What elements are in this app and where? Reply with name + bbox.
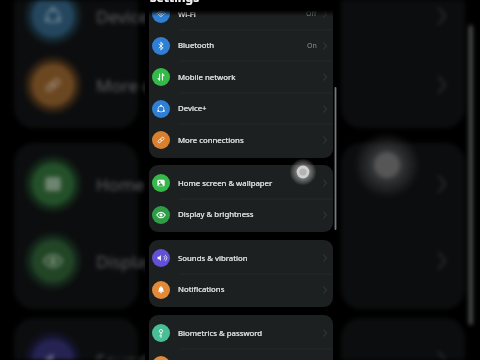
button[interactable]: Home screen & wallpaper — [149, 167, 333, 199]
button[interactable]: More connections — [149, 124, 333, 156]
staticText: Device+ — [96, 5, 159, 28]
button[interactable]: Sounds & vibration — [149, 242, 333, 274]
staticText: More connections — [96, 74, 240, 97]
staticText: Off — [306, 9, 317, 19]
other: Touch indicator — [145, 0, 337, 360]
staticText: Display & brightness — [178, 209, 254, 220]
staticText: More connections — [178, 135, 244, 146]
staticText: Display & bright — [96, 250, 225, 273]
staticText: Sounds — [96, 349, 156, 360]
button[interactable]: Notifications — [149, 274, 333, 305]
staticText: Bluetooth — [178, 40, 215, 51]
staticText: Home screen & wallpaper — [178, 178, 273, 189]
staticText: Biometrics & password — [178, 328, 263, 339]
button[interactable]: Device+ — [149, 93, 333, 124]
staticText: Mobile network — [178, 72, 236, 83]
staticText: Device+ — [178, 103, 207, 114]
staticText: Home screen — [96, 173, 202, 196]
staticText: Sounds & vibration — [178, 253, 248, 264]
staticText: Settings — [150, 0, 200, 5]
staticText: On — [307, 41, 317, 51]
button[interactable]: Mobile network — [149, 61, 333, 93]
button[interactable]: Bluetooth — [149, 30, 333, 61]
button[interactable]: Biometrics & password — [149, 317, 333, 349]
button[interactable]: Wi-Fi — [149, 0, 333, 30]
button[interactable]: Apps — [149, 349, 333, 360]
staticText: Wi-Fi — [178, 9, 196, 20]
button[interactable]: Display & brightness — [149, 199, 333, 230]
staticText: Notifications — [178, 284, 225, 295]
